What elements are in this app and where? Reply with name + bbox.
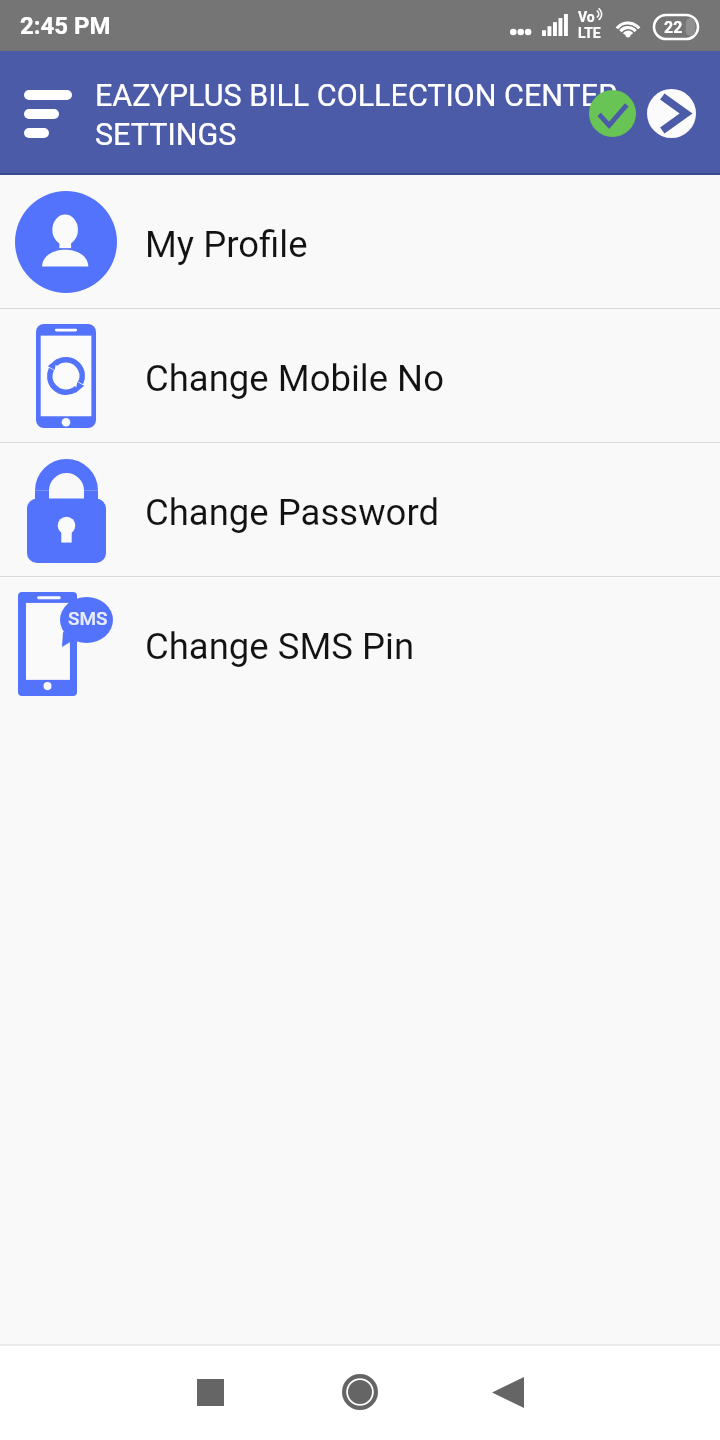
button[interactable]: SMS — [0, 577, 720, 710]
staticText: LTE — [578, 25, 601, 41]
staticText: 22 — [664, 18, 683, 37]
button[interactable]: My Profile — [0, 175, 720, 308]
staticText: Vo — [578, 9, 595, 25]
button[interactable]: Recent apps — [164, 1346, 256, 1438]
staticText: Change Password — [145, 491, 439, 534]
staticText: Change Mobile No — [145, 357, 444, 400]
staticText: SMS — [68, 607, 108, 629]
staticText: 2:45 PM — [20, 12, 111, 40]
button[interactable]: Home — [314, 1346, 406, 1438]
button[interactable]: Back — [464, 1346, 556, 1438]
button[interactable]: Change Mobile No — [0, 309, 720, 442]
button[interactable]: Next — [647, 89, 696, 138]
button[interactable]: Menu — [12, 78, 84, 150]
staticText: EAZYPLUS BILL COLLECTION CENTER SETTINGS — [95, 78, 647, 152]
button[interactable]: Verified — [589, 90, 636, 137]
staticText: Change SMS Pin — [145, 625, 415, 668]
button[interactable]: Change Password — [0, 443, 720, 576]
staticText: My Profile — [145, 223, 308, 266]
